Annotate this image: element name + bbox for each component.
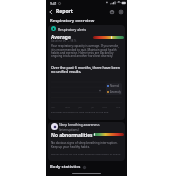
staticText: Respiratory alerts [58, 27, 87, 32]
staticText: Respiratory overview [50, 18, 95, 24]
staticText: May [65, 105, 70, 108]
staticText: Average [51, 34, 71, 41]
button[interactable]: Back [47, 8, 55, 16]
staticText: Sleep breathing awareness [59, 123, 100, 127]
staticText: Sep [116, 105, 121, 108]
button[interactable]: Export [117, 8, 125, 16]
staticText: (interruptions) [59, 128, 79, 132]
staticText: Anomaly [110, 90, 121, 94]
staticText: Jul [91, 105, 94, 108]
staticText: Estimates are based on data collected by… [51, 110, 109, 113]
button[interactable]: Sleep breathing awareness [48, 122, 125, 161]
staticText: Your respiratory capacity is average. If… [51, 44, 120, 58]
staticText: Aug [102, 105, 107, 108]
staticText: Body statistics [50, 164, 81, 170]
staticText: – 98 % [68, 39, 77, 43]
staticText: Baseline 96 [51, 39, 66, 43]
staticText: Normal [110, 84, 120, 88]
staticText: Results are not for the latest baseline … [51, 152, 121, 155]
staticText: No abnormalities [51, 132, 93, 139]
staticText: Over the past 6 months, there have been … [51, 65, 121, 74]
staticText: No obvious signs of sleep breathing inte… [51, 141, 120, 149]
staticText: Report [56, 8, 73, 15]
button[interactable]: Calendar [108, 8, 116, 16]
staticText: 9:41 [50, 1, 57, 6]
button[interactable]: Body statistics [50, 164, 86, 170]
button[interactable]: Respiratory alerts [48, 25, 125, 120]
staticText: Jun [78, 105, 82, 108]
staticText: Apr [51, 105, 56, 108]
